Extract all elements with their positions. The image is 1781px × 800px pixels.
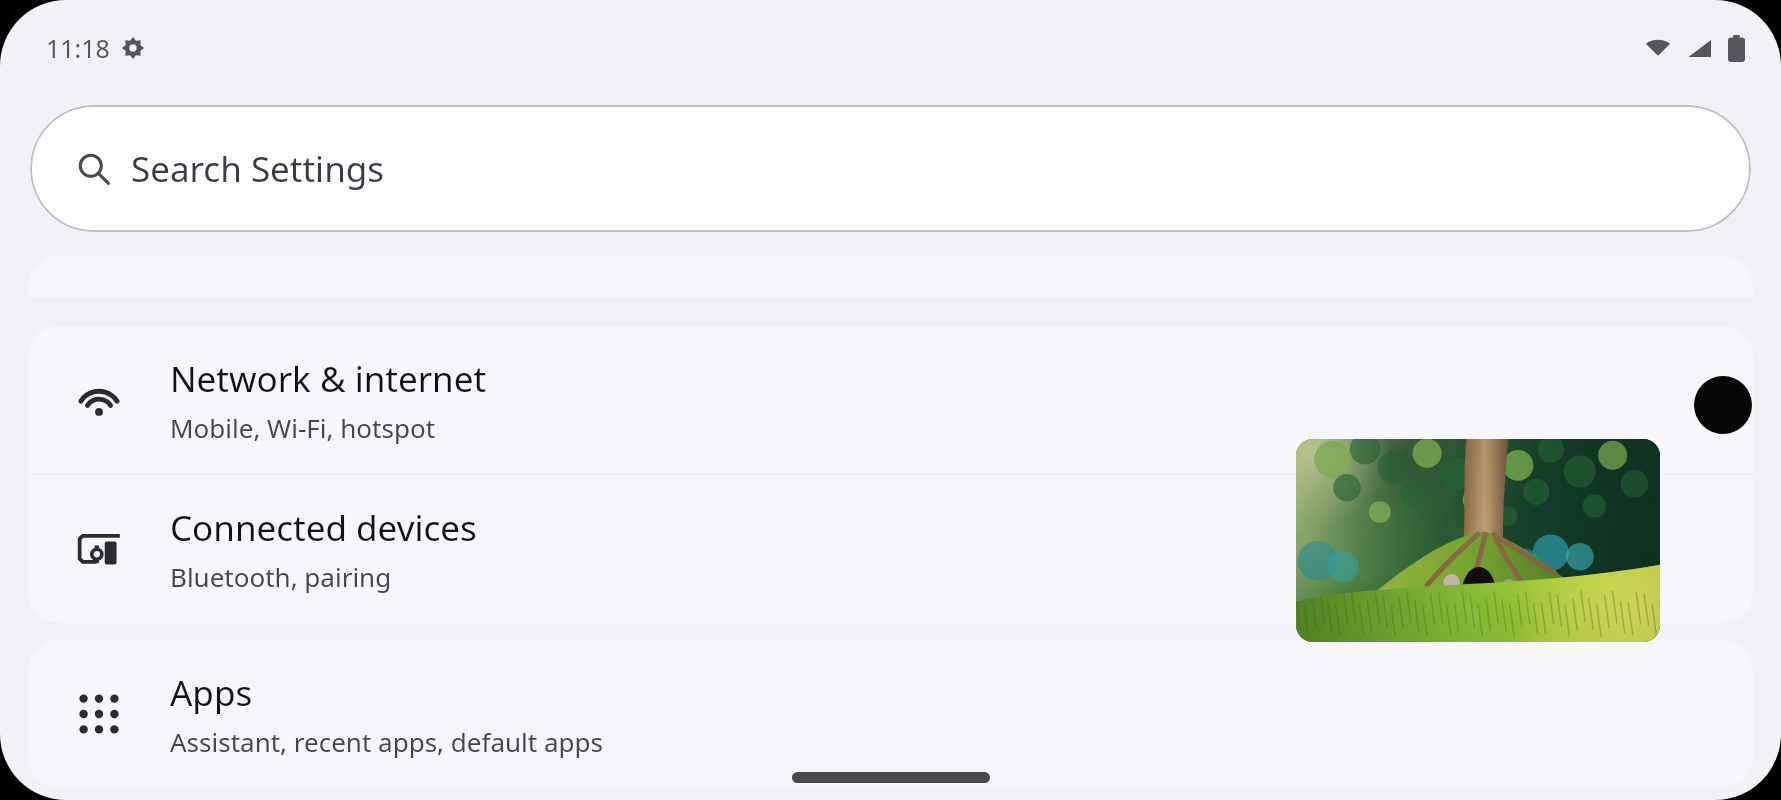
button[interactable]: Apps xyxy=(28,640,1753,788)
button[interactable]: Picture in picture video xyxy=(1296,439,1660,642)
staticText: Assistant, recent apps, default apps xyxy=(170,724,603,759)
staticText: Network & internet xyxy=(170,355,487,403)
button[interactable]: Network & internet xyxy=(28,326,1753,474)
button[interactable]: Connected devices xyxy=(28,475,1753,623)
staticText: Mobile, Wi-Fi, hotspot xyxy=(170,410,436,445)
button[interactable]: Search Settings xyxy=(30,105,1751,232)
staticText: Bluetooth, pairing xyxy=(170,559,392,594)
staticText: 11:18 xyxy=(46,31,110,65)
staticText: Apps xyxy=(170,669,253,717)
staticText: Search Settings xyxy=(131,145,385,193)
staticText: Connected devices xyxy=(170,504,477,552)
